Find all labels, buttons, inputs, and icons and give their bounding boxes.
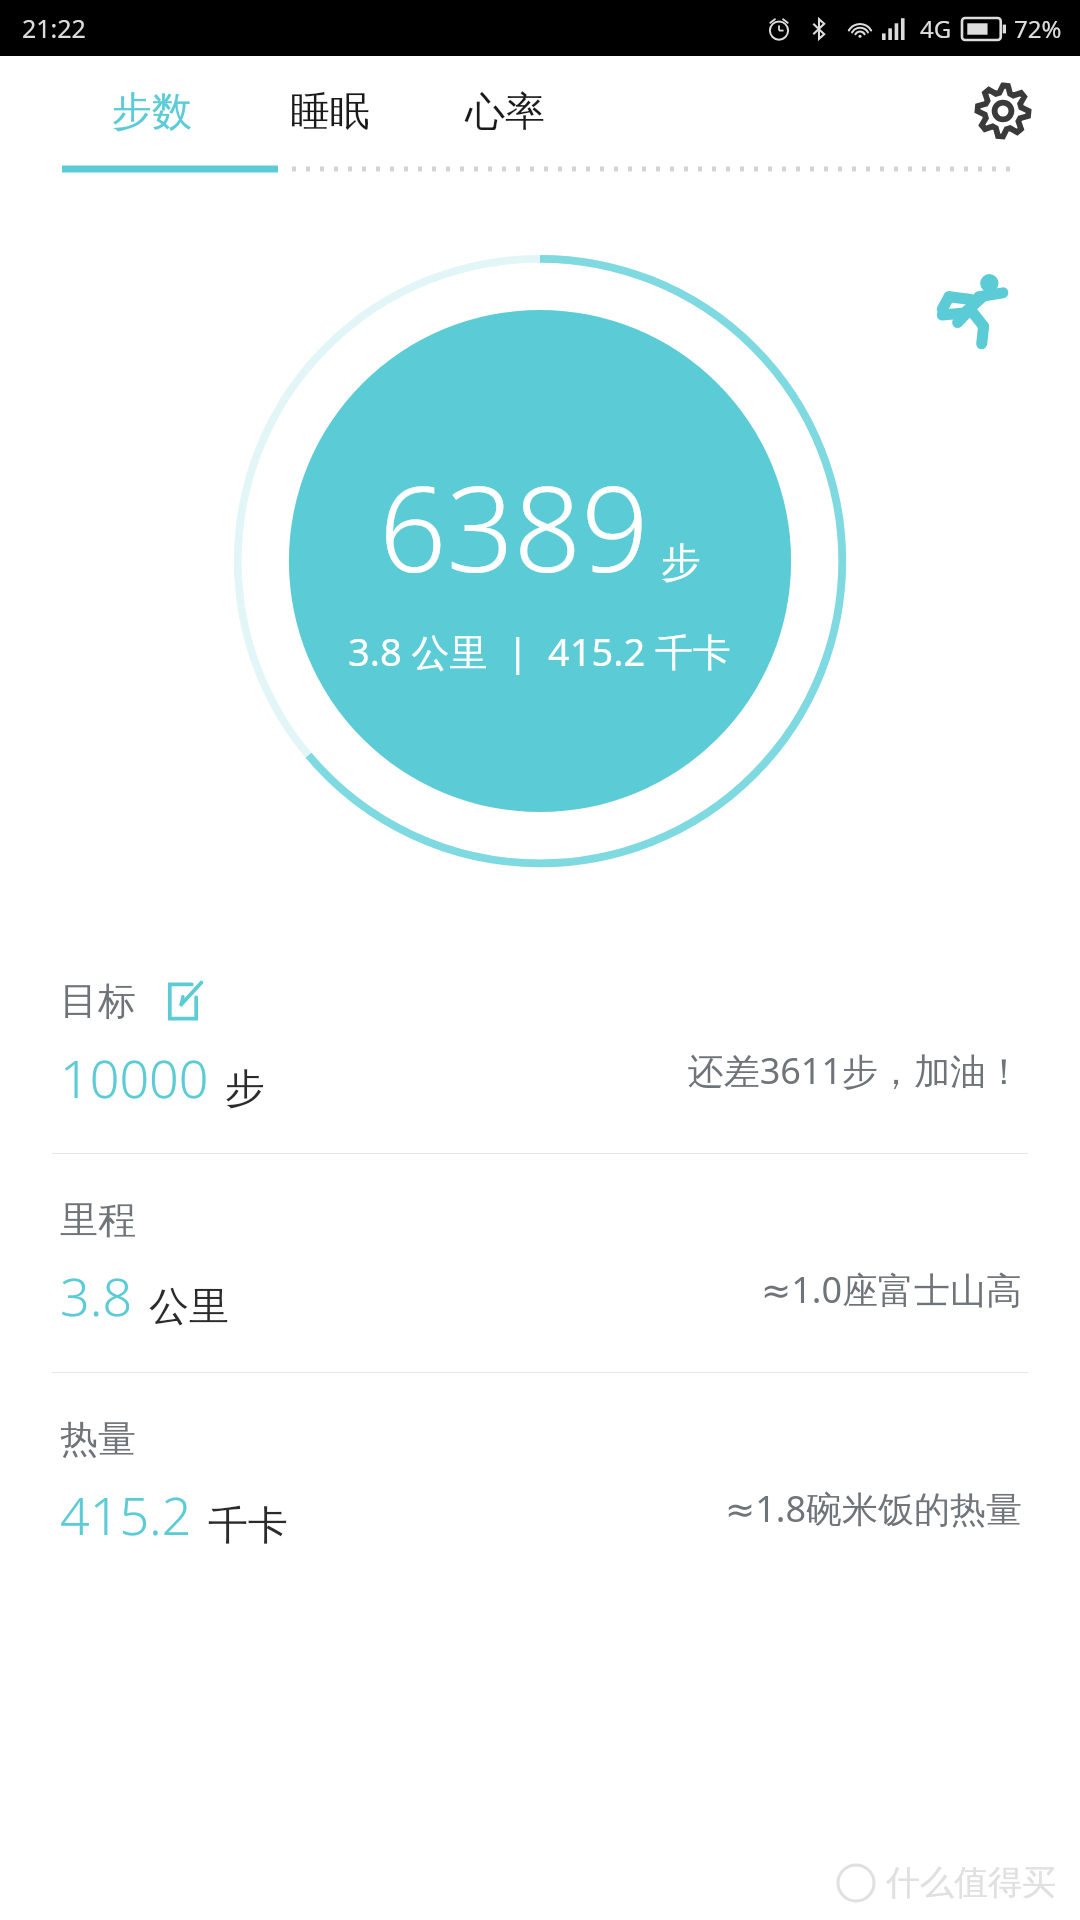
staticText: ≈1.8碗米饭的热量 [725,1484,1022,1533]
button[interactable]: 里程 [0,1154,1080,1372]
staticText: 3.8 公里 | 415.2 千卡 [348,625,732,677]
button[interactable]: 目标 [0,935,1080,1153]
button[interactable]: Settings [958,66,1048,156]
staticText: 415.2 [60,1479,192,1550]
staticText: 里程 [60,1196,136,1244]
staticText: 步数 [112,86,192,136]
staticText: 公里 [149,1281,229,1331]
staticText: 步 [225,1063,265,1113]
staticText: 10000 [60,1042,209,1113]
staticText: 还差3611步，加油！ [687,1046,1022,1095]
staticText: 4G [920,12,952,45]
button[interactable]: Edit goal [158,976,208,1026]
button[interactable]: 睡眠 [242,56,417,166]
staticText: 目标 [60,977,136,1025]
button[interactable]: 心率 [417,56,592,166]
staticText: 6389 [379,446,649,607]
button[interactable]: Activity [926,265,1022,361]
button[interactable]: 步数 [62,56,242,166]
staticText: 21:22 [22,11,86,45]
staticText: 千卡 [208,1500,288,1550]
staticText: 心率 [465,86,545,136]
staticText: 步 [661,537,701,587]
button[interactable]: 热量 [0,1373,1080,1591]
staticText: 热量 [60,1415,136,1463]
staticText: 3.8 [60,1260,133,1331]
staticText: 睡眠 [290,86,370,136]
staticText: 什么值得买 [886,1861,1056,1904]
staticText: ≈1.0座富士山高 [761,1265,1022,1314]
staticText: 72% [1014,12,1062,45]
